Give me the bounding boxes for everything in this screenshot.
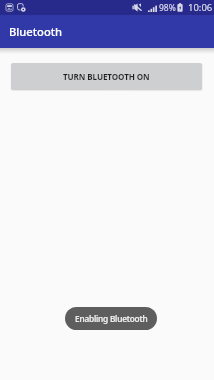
staticText: 10:06 — [188, 1, 213, 14]
staticText: TURN BLUETOOTH ON — [63, 71, 150, 82]
staticText: Enabling Bluetooth — [75, 313, 148, 324]
button[interactable]: TURN BLUETOOTH ON — [11, 63, 202, 90]
staticText: Bluetooth — [9, 24, 63, 39]
other: Battery charging — [177, 3, 183, 12]
staticText: 98% — [159, 2, 176, 14]
other: Sound muted — [132, 3, 142, 12]
other: System update — [17, 3, 26, 12]
other: Mobile signal strength — [148, 4, 157, 12]
other: Screenshot captured — [5, 3, 14, 12]
